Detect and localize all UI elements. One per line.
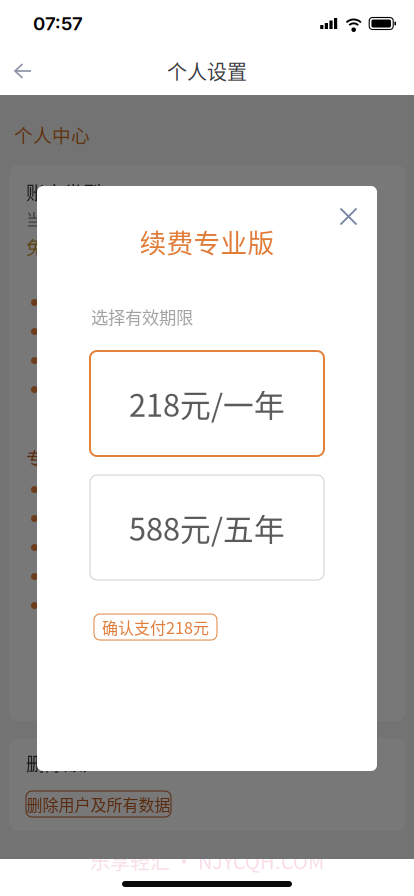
button[interactable]: 关闭 — [331, 199, 366, 234]
staticText: 本地数据存储 — [47, 378, 143, 401]
staticText: 高级统计与分析 — [47, 507, 159, 530]
button[interactable]: 588元/五年 — [90, 475, 324, 580]
staticText: 最多 100 条记录 — [47, 320, 162, 343]
button[interactable]: 确认支付218元 — [94, 614, 217, 640]
staticText: 个人中心 — [14, 121, 90, 148]
button[interactable]: 返回 — [5, 53, 40, 88]
staticText: 当前版本 — [26, 207, 90, 230]
staticText: 基础记账功能 — [47, 291, 143, 314]
staticText: 218元/一年 — [129, 381, 285, 426]
staticText: 选择有效期限 — [91, 304, 193, 329]
staticText: 专业版 — [26, 444, 83, 471]
staticText: 续费专业版 — [139, 222, 274, 261]
button[interactable]: 删除用户及所有数据 — [26, 791, 171, 817]
staticText: 删除用户及所有数据 — [26, 792, 170, 816]
staticText: 账户类型 — [26, 178, 102, 205]
staticText: 云端数据同步 — [47, 536, 143, 559]
staticText: 588元/五年 — [129, 505, 285, 550]
staticText: 确认支付218元 — [102, 615, 209, 639]
staticText: 07:57 — [33, 12, 83, 35]
staticText: 基础统计报表 — [47, 349, 143, 372]
staticText: 无限条记账记录 — [47, 478, 159, 501]
staticText: 专属客服支持 — [47, 594, 143, 617]
staticText: 删除账户 — [26, 749, 102, 776]
staticText: 免费版 — [26, 233, 83, 260]
button[interactable]: 218元/一年 — [90, 351, 324, 456]
staticText: 乐享轻汇 · NJYCQH.COM — [90, 846, 324, 875]
staticText: 数据导出 Excel — [47, 565, 154, 588]
staticText: 个人设置 — [167, 56, 247, 85]
